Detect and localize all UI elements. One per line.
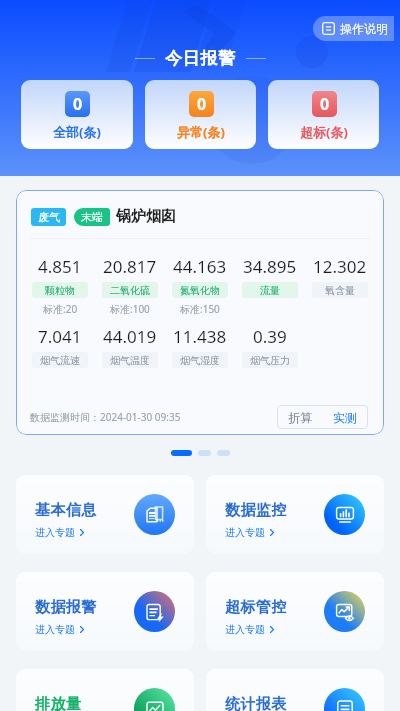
staticText: 进入专题: [35, 526, 75, 539]
staticText: 44.019: [103, 325, 157, 348]
staticText: 标准:20: [43, 302, 78, 316]
staticText: 基本信息: [35, 501, 97, 520]
staticText: 44.163: [173, 255, 227, 278]
button[interactable]: 排放量: [16, 669, 194, 711]
button[interactable]: 数据报警: [16, 572, 194, 651]
staticText: 异常(条): [177, 123, 225, 141]
button[interactable]: 实测: [322, 405, 368, 429]
staticText: 烟气流速: [40, 354, 80, 367]
staticText: 操作说明: [340, 21, 388, 36]
staticText: 颗粒物: [45, 284, 75, 297]
staticText: 0: [320, 93, 330, 115]
button[interactable]: 操作说明: [313, 16, 394, 41]
staticText: 统计报表: [225, 695, 287, 711]
button[interactable]: 基本信息: [16, 475, 194, 554]
staticText: 超标管控: [225, 598, 287, 617]
staticText: 末端: [81, 210, 103, 224]
staticText: 二氧化硫: [110, 284, 150, 297]
staticText: 今日报警: [165, 48, 236, 69]
staticText: 标准:100: [110, 302, 150, 316]
staticText: 折算: [288, 410, 312, 425]
staticText: 排放量: [35, 695, 82, 711]
staticText: 烟气压力: [250, 354, 290, 367]
staticText: 0.39: [253, 325, 287, 348]
staticText: 20.817: [103, 255, 157, 278]
staticText: 超标(条): [300, 123, 348, 141]
staticText: 全部(条): [53, 123, 101, 141]
staticText: 氧含量: [325, 284, 355, 297]
staticText: 0: [197, 93, 207, 115]
button[interactable]: 统计报表: [206, 669, 384, 711]
button[interactable]: 0: [268, 80, 379, 149]
staticText: 7.041: [38, 325, 82, 348]
button[interactable]: 超标管控: [206, 572, 384, 651]
staticText: 数据监控: [225, 501, 287, 520]
staticText: 数据报警: [35, 598, 97, 617]
staticText: 烟气湿度: [180, 354, 220, 367]
staticText: 锅炉烟囱: [116, 207, 176, 226]
staticText: 进入专题: [225, 623, 265, 636]
button[interactable]: 数据监控: [206, 475, 384, 554]
staticText: 数据监测时间：2024-01-30 09:35: [30, 410, 181, 424]
staticText: 进入专题: [225, 526, 265, 539]
button[interactable]: 折算: [277, 405, 322, 429]
staticText: 11.438: [173, 325, 227, 348]
staticText: 氮氧化物: [180, 284, 220, 297]
staticText: 进入专题: [35, 623, 75, 636]
staticText: 流量: [260, 284, 280, 297]
staticText: 废气: [38, 210, 60, 224]
staticText: 34.895: [243, 255, 297, 278]
staticText: 12.302: [313, 255, 367, 278]
button[interactable]: 0: [21, 80, 133, 149]
staticText: 标准:150: [180, 302, 220, 316]
staticText: 4.851: [38, 255, 82, 278]
staticText: 烟气温度: [110, 354, 150, 367]
button[interactable]: 0: [145, 80, 256, 149]
staticText: 实测: [333, 410, 357, 425]
staticText: 0: [73, 93, 83, 115]
